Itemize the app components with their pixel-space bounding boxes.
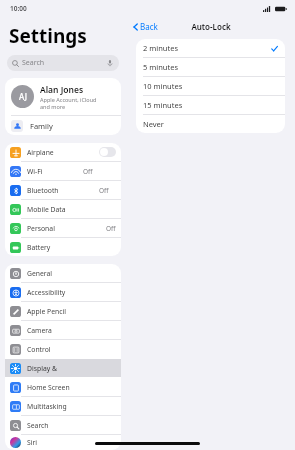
button[interactable]: 15 minutes bbox=[136, 96, 285, 114]
staticText: Accessibility bbox=[27, 288, 66, 297]
staticText: 15 minutes bbox=[143, 100, 183, 110]
staticText: Mobile Data bbox=[27, 205, 66, 214]
button[interactable]: AJ bbox=[5, 78, 121, 115]
staticText: and more bbox=[40, 103, 66, 110]
button[interactable]: 10 minutes bbox=[136, 77, 285, 95]
button[interactable]: Never bbox=[136, 115, 285, 133]
staticText: Home Screen & App Library bbox=[27, 383, 71, 392]
staticText: Settings bbox=[9, 23, 87, 49]
staticText: Multitasking & Gestures bbox=[27, 402, 71, 411]
staticText: Apple Pencil bbox=[27, 307, 66, 316]
staticText: 10 minutes bbox=[143, 81, 183, 91]
staticText: 5 minutes bbox=[143, 62, 178, 72]
staticText: Never bbox=[143, 119, 164, 129]
button[interactable]: Multitasking & Gestures bbox=[5, 397, 121, 415]
button[interactable]: Search bbox=[5, 416, 121, 434]
button[interactable]: Airplane Mode bbox=[5, 143, 121, 161]
staticText: 2 minutes bbox=[143, 43, 178, 53]
button[interactable]: Home Screen & App Library bbox=[5, 378, 121, 396]
other: Selected bbox=[271, 45, 278, 52]
staticText: Battery bbox=[27, 243, 51, 252]
staticText: Airplane Mode bbox=[27, 148, 63, 157]
staticText: AJ bbox=[19, 91, 27, 102]
staticText: Back bbox=[140, 21, 158, 32]
staticText: Off bbox=[99, 186, 109, 195]
button[interactable]: Back bbox=[131, 19, 160, 34]
staticText: Display & Brightness bbox=[27, 364, 71, 373]
button[interactable]: Display & Brightness bbox=[5, 359, 121, 377]
staticText: 10:00 bbox=[10, 4, 27, 13]
staticText: Apple Account, iCloud bbox=[40, 96, 97, 103]
button[interactable]: 2 minutes bbox=[136, 39, 285, 57]
button[interactable]: Apple Pencil bbox=[5, 302, 121, 320]
staticText: Bluetooth bbox=[27, 186, 59, 195]
button[interactable]: Bluetooth bbox=[5, 181, 121, 199]
button[interactable]: Personal Hotspot bbox=[5, 219, 121, 237]
button[interactable]: 5 minutes bbox=[136, 58, 285, 76]
button[interactable]: Camera bbox=[5, 321, 121, 339]
staticText: Camera bbox=[27, 326, 52, 335]
staticText: Personal Hotspot bbox=[27, 224, 66, 233]
staticText: Auto-Lock bbox=[191, 21, 231, 32]
button[interactable]: Battery bbox=[5, 238, 121, 256]
staticText: Family bbox=[30, 121, 53, 131]
staticText: General bbox=[27, 269, 53, 278]
staticText: Siri bbox=[27, 438, 38, 447]
button[interactable]: Wi-Fi bbox=[5, 162, 121, 180]
button[interactable]: Siri bbox=[5, 435, 121, 450]
staticText: Off bbox=[83, 167, 93, 176]
button[interactable]: General bbox=[5, 264, 121, 282]
staticText: Off bbox=[106, 224, 116, 233]
button[interactable]: Family bbox=[5, 116, 121, 135]
staticText: Search bbox=[22, 58, 45, 68]
button[interactable]: Accessibility bbox=[5, 283, 121, 301]
staticText: Wi-Fi bbox=[27, 167, 43, 176]
staticText: Search bbox=[27, 421, 49, 430]
button[interactable]: Mobile Data bbox=[5, 200, 121, 218]
staticText: Control Centre bbox=[27, 345, 71, 354]
button[interactable]: Search bbox=[7, 55, 119, 71]
staticText: Alan Jones bbox=[40, 84, 84, 96]
button[interactable]: Control Centre bbox=[5, 340, 121, 358]
